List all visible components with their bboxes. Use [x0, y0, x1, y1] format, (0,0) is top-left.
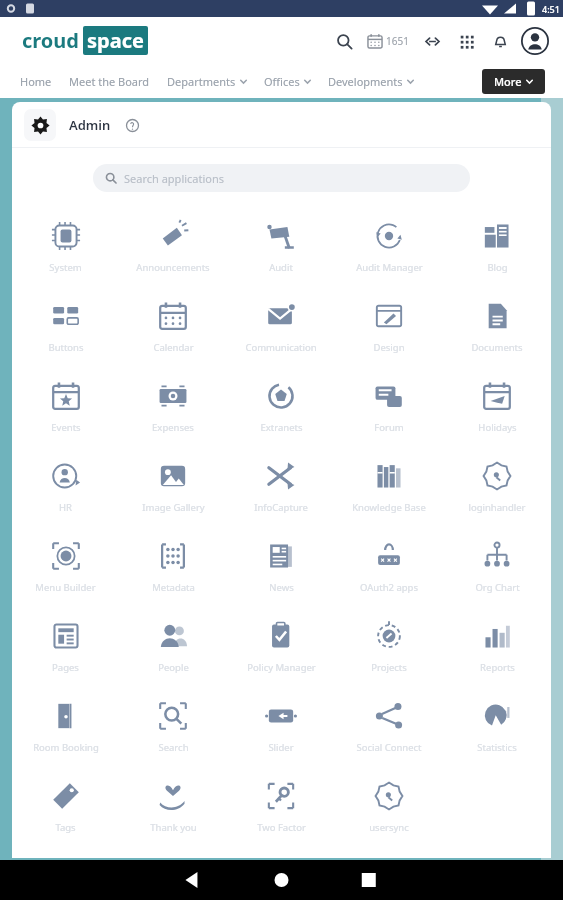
button[interactable]: Communication	[227, 290, 335, 370]
button[interactable]: Meet the Board	[69, 68, 150, 95]
button[interactable]: People	[119, 610, 227, 690]
button[interactable]: loginhandler	[443, 450, 551, 530]
staticText: Holidays	[478, 421, 517, 434]
button[interactable]: Projects	[335, 610, 443, 690]
button[interactable]: Pages	[12, 610, 119, 690]
staticText: Meet the Board	[69, 74, 150, 89]
staticText: More	[494, 74, 522, 89]
staticText: 1651	[386, 34, 409, 48]
staticText: InfoCapture	[254, 501, 308, 514]
button[interactable]: Buttons	[12, 290, 119, 370]
staticText: usersync	[369, 821, 409, 834]
staticText: System	[49, 261, 82, 274]
button[interactable]: Social Connect	[335, 690, 443, 770]
button[interactable]: Blog	[443, 210, 551, 290]
staticText: Social Connect	[356, 741, 422, 754]
button[interactable]: Documents	[443, 290, 551, 370]
staticText: People	[158, 661, 189, 674]
button[interactable]: Policy Manager	[227, 610, 335, 690]
button[interactable]: Search	[119, 690, 227, 770]
button[interactable]: Reports	[443, 610, 551, 690]
button[interactable]: Search applications	[93, 164, 470, 192]
staticText: Image Gallery	[142, 501, 205, 514]
staticText: Pages	[52, 661, 79, 674]
staticText: space	[87, 27, 144, 54]
button[interactable]: Settings	[24, 109, 56, 141]
button[interactable]: HR	[12, 450, 119, 530]
button[interactable]: Holidays	[443, 370, 551, 450]
button[interactable]: usersync	[335, 770, 443, 850]
staticText: Metadata	[152, 581, 195, 594]
staticText: 4:51	[542, 3, 560, 15]
button[interactable]: News	[227, 530, 335, 610]
button[interactable]: Statistics	[443, 690, 551, 770]
button[interactable]: Room Booking	[12, 690, 119, 770]
button[interactable]: Help	[122, 115, 142, 135]
staticText: Documents	[471, 341, 523, 354]
staticText: Statistics	[477, 741, 517, 754]
button[interactable]: Calendar 1651	[365, 27, 411, 55]
staticText: Search	[158, 741, 189, 754]
staticText: Slider	[268, 741, 294, 754]
staticText: HR	[59, 501, 72, 514]
staticText: Tags	[55, 821, 76, 834]
button[interactable]: Forum	[335, 370, 443, 450]
button[interactable]: Home	[20, 68, 52, 95]
staticText: Org Chart	[475, 581, 520, 594]
staticText: Thank you	[150, 821, 197, 834]
button[interactable]: Departments	[167, 68, 247, 95]
button[interactable]: Audit	[227, 210, 335, 290]
staticText: Audit Manager	[356, 261, 423, 274]
button[interactable]: Image Gallery	[119, 450, 227, 530]
button[interactable]: Menu Builder	[12, 530, 119, 610]
button[interactable]: Extranets	[227, 370, 335, 450]
button[interactable]: Developments	[328, 68, 414, 95]
staticText: Calendar	[153, 341, 194, 354]
button[interactable]: Search	[331, 28, 357, 54]
button[interactable]: Org Chart	[443, 530, 551, 610]
staticText: News	[269, 581, 294, 594]
button[interactable]: Thank you	[119, 770, 227, 850]
staticText: Extranets	[260, 421, 303, 434]
staticText: Announcements	[136, 261, 210, 274]
button[interactable]: Knowledge Base	[335, 450, 443, 530]
staticText: OAuth2 apps	[360, 581, 418, 594]
staticText: Design	[373, 341, 405, 354]
staticText: Menu Builder	[35, 581, 96, 594]
staticText: Departments	[167, 74, 236, 89]
staticText: Audit	[269, 261, 293, 274]
button[interactable]: Tags	[12, 770, 119, 850]
button[interactable]: Events	[12, 370, 119, 450]
staticText: Projects	[371, 661, 407, 674]
button[interactable]: Calendar	[119, 290, 227, 370]
button[interactable]: Notifications	[487, 28, 513, 54]
staticText: loginhandler	[468, 501, 526, 514]
button[interactable]: Metadata	[119, 530, 227, 610]
staticText: Home	[20, 74, 52, 89]
staticText: Two Factor	[257, 821, 306, 834]
staticText: Search applications	[124, 171, 225, 186]
button[interactable]: Profile	[521, 27, 549, 55]
staticText: Policy Manager	[247, 661, 316, 674]
button[interactable]: Design	[335, 290, 443, 370]
staticText: Room Booking	[33, 741, 99, 754]
staticText: Admin	[69, 116, 111, 134]
button[interactable]: Audit Manager	[335, 210, 443, 290]
staticText: Blog	[487, 261, 508, 274]
staticText: Knowledge Base	[352, 501, 426, 514]
button[interactable]: System	[12, 210, 119, 290]
button[interactable]: OAuth2 apps	[335, 530, 443, 610]
button[interactable]: Slider	[227, 690, 335, 770]
button[interactable]: More	[482, 69, 545, 94]
button[interactable]: Expenses	[119, 370, 227, 450]
button[interactable]: InfoCapture	[227, 450, 335, 530]
button[interactable]: Two Factor	[227, 770, 335, 850]
button[interactable]: Announcements	[119, 210, 227, 290]
button[interactable]: Links	[419, 28, 445, 54]
staticText: Reports	[480, 661, 515, 674]
staticText: Expenses	[152, 421, 194, 434]
staticText: Events	[51, 421, 81, 434]
button[interactable]: Offices	[264, 68, 311, 95]
button[interactable]: Apps	[453, 28, 479, 54]
staticText: Communication	[245, 341, 317, 354]
